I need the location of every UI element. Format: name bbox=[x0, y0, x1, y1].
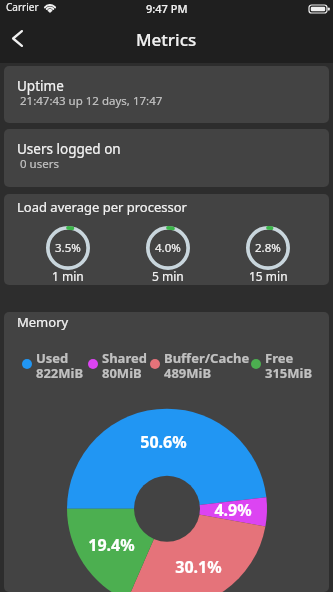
staticText: 2.8% bbox=[255, 240, 281, 256]
staticText: 4.9% bbox=[214, 499, 252, 521]
button[interactable]: Uptime bbox=[4, 66, 329, 123]
staticText: 21:47:43 up 12 days, 17:47 bbox=[20, 93, 163, 109]
staticText: 1 min bbox=[52, 268, 84, 284]
staticText: Shared bbox=[102, 349, 147, 367]
staticText: Carrier bbox=[6, 0, 39, 14]
staticText: 315MiB bbox=[265, 364, 313, 382]
staticText: 489MiB bbox=[164, 364, 212, 382]
staticText: Users logged on bbox=[17, 140, 121, 158]
staticText: 15 min bbox=[249, 268, 288, 284]
staticText: 5 min bbox=[152, 268, 184, 284]
staticText: 9:47 PM bbox=[146, 1, 188, 16]
staticText: 30.1% bbox=[175, 556, 222, 578]
button[interactable]: Users logged on bbox=[4, 129, 329, 187]
staticText: 822MiB bbox=[36, 364, 84, 382]
staticText: Metrics bbox=[136, 28, 197, 51]
staticText: Buffer/Cache bbox=[164, 349, 250, 367]
staticText: Free bbox=[265, 349, 294, 367]
staticText: 80MiB bbox=[102, 364, 142, 382]
staticText: 19.4% bbox=[88, 534, 135, 556]
staticText: 3.5% bbox=[55, 240, 81, 256]
staticText: Load average per processor bbox=[17, 198, 187, 216]
button[interactable]: Back bbox=[0, 20, 44, 60]
staticText: Memory bbox=[17, 313, 69, 331]
staticText: 4.0% bbox=[155, 240, 181, 256]
staticText: Uptime bbox=[17, 77, 64, 95]
staticText: 0 users bbox=[20, 156, 59, 172]
button[interactable]: Load average per processor bbox=[4, 194, 329, 285]
staticText: Used bbox=[36, 349, 69, 367]
staticText: 50.6% bbox=[140, 431, 187, 453]
button[interactable]: Memory bbox=[4, 312, 329, 592]
